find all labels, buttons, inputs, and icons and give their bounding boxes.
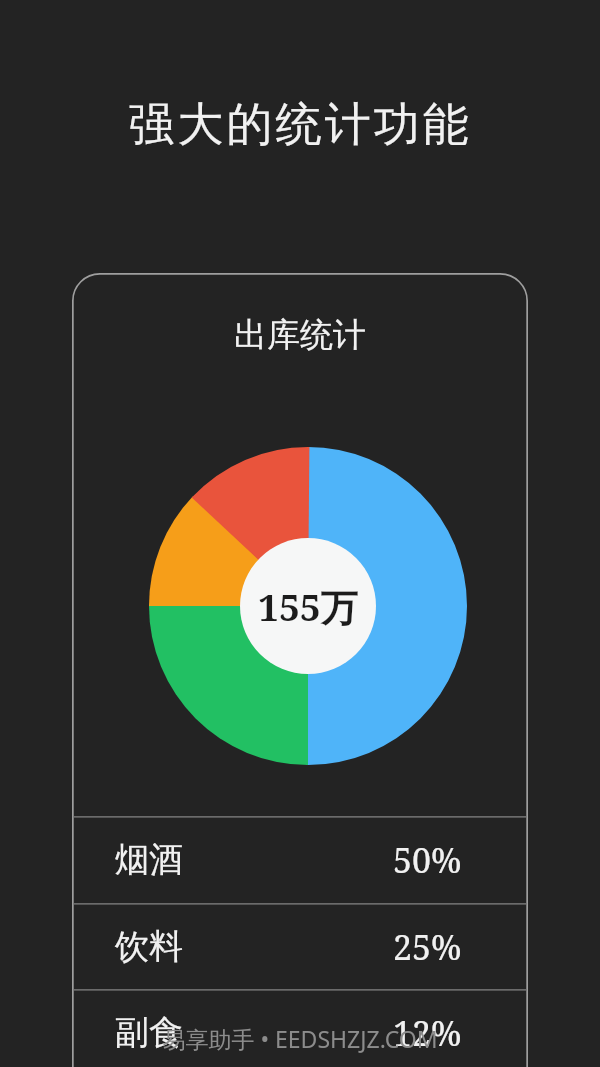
staticText: 12% [393, 1010, 462, 1056]
staticText: 烟酒 [115, 838, 183, 881]
button[interactable]: 烟酒 [115, 816, 462, 903]
staticText: 25% [393, 924, 462, 970]
staticText: 易享助手 • EEDSHZJZ.COM [0, 1023, 600, 1054]
staticText: 50% [393, 837, 462, 883]
staticText: 副食 [115, 1011, 183, 1054]
staticText: 155万 [258, 581, 358, 632]
button[interactable]: 饮料 [115, 903, 462, 990]
staticText: 出库统计 [72, 314, 528, 356]
button[interactable]: 副食 [115, 989, 462, 1067]
staticText: 强大的统计功能 [0, 96, 600, 154]
button[interactable]: 出库统计 [72, 273, 528, 1067]
staticText: 饮料 [115, 925, 183, 968]
